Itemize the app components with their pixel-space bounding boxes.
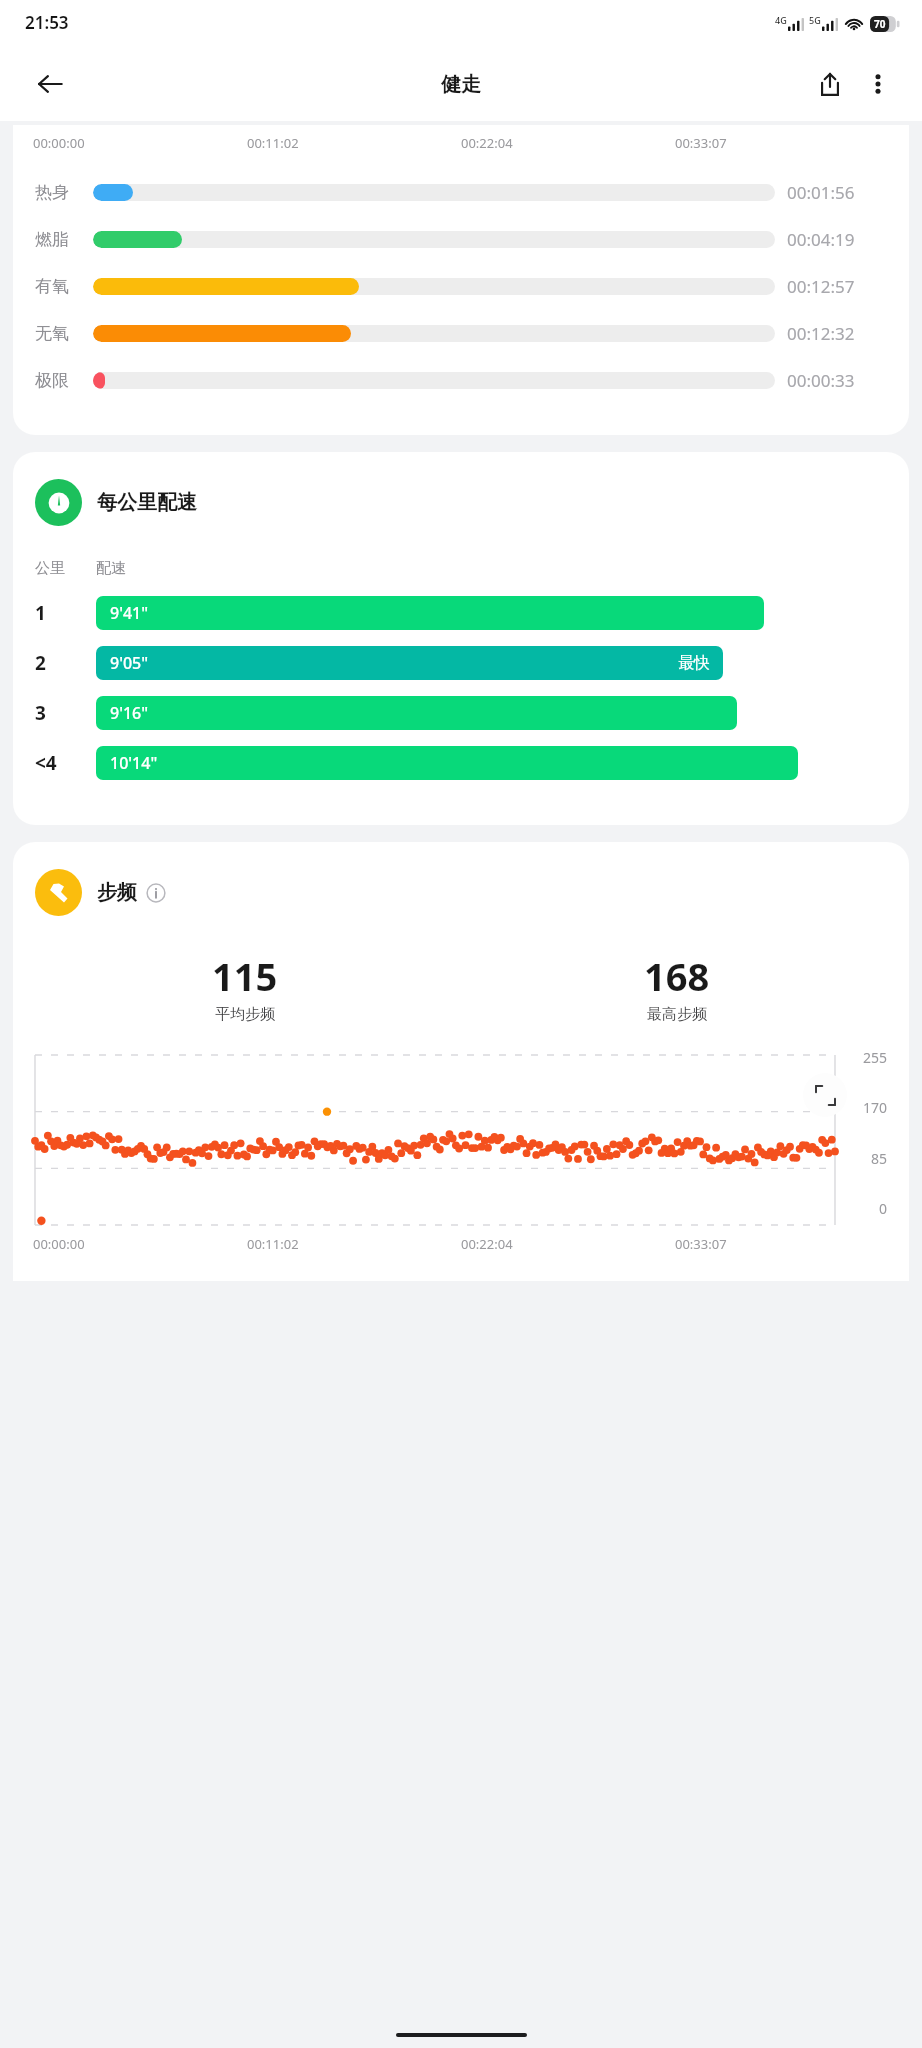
staticText: 最高步频 — [647, 1005, 707, 1024]
staticText: 公里 — [35, 559, 96, 578]
staticText: 1 — [35, 600, 46, 626]
staticText: 00:01:56 — [787, 181, 887, 204]
staticText: 5G — [809, 14, 821, 26]
button[interactable]: Share — [806, 60, 854, 108]
staticText: 热身 — [35, 182, 93, 203]
staticText: 00:11:02 — [247, 134, 299, 152]
staticText: 21:53 — [25, 11, 69, 34]
staticText: 燃脂 — [35, 229, 93, 250]
button[interactable]: Cadence info — [145, 882, 167, 904]
staticText: 00:12:32 — [787, 322, 887, 345]
staticText: 2 — [35, 650, 46, 676]
staticText: 00:00:00 — [33, 134, 85, 152]
staticText: 115 — [212, 950, 278, 1002]
staticText: 00:04:19 — [787, 228, 887, 251]
staticText: 有氧 — [35, 276, 93, 297]
button[interactable]: 00:00:00 — [13, 125, 909, 435]
staticText: 00:22:04 — [461, 134, 513, 152]
staticText: 极限 — [35, 370, 93, 391]
staticText: 9'41" — [110, 602, 149, 624]
staticText: 0 — [878, 1199, 887, 1218]
staticText: 00:00:33 — [787, 369, 887, 392]
staticText: 85 — [870, 1149, 887, 1168]
button[interactable]: Back — [26, 60, 74, 108]
staticText: 168 — [644, 950, 710, 1002]
button[interactable]: 每公里配速 — [13, 452, 909, 825]
staticText: 最快 — [678, 653, 710, 673]
button[interactable]: 9'05" — [96, 646, 723, 680]
staticText: 3 — [35, 700, 46, 726]
staticText: 每公里配速 — [97, 490, 197, 515]
staticText: 00:00:00 — [33, 1235, 85, 1253]
staticText: 170 — [862, 1098, 887, 1117]
button[interactable]: 步频 — [13, 842, 909, 1281]
staticText: 健走 — [441, 72, 481, 97]
button[interactable]: 9'16" — [96, 696, 737, 730]
staticText: 70 — [874, 17, 886, 31]
button[interactable]: 10'14" — [96, 746, 798, 780]
staticText: 00:11:02 — [247, 1235, 299, 1253]
button[interactable]: 9'41" — [96, 596, 764, 630]
staticText: 00:12:57 — [787, 275, 887, 298]
staticText: <4 — [35, 750, 57, 776]
staticText: 10'14" — [110, 752, 158, 774]
staticText: 4G — [775, 14, 787, 26]
staticText: 无氧 — [35, 323, 93, 344]
staticText: 9'05" — [110, 652, 149, 674]
staticText: 00:33:07 — [675, 1235, 727, 1253]
staticText: 00:33:07 — [675, 134, 727, 152]
staticText: 配速 — [96, 559, 126, 578]
staticText: 9'16" — [110, 702, 149, 724]
button[interactable]: More options — [854, 60, 902, 108]
staticText: 步频 — [97, 880, 137, 905]
button[interactable]: Expand chart — [803, 1073, 847, 1117]
staticText: 255 — [862, 1048, 887, 1067]
staticText: 平均步频 — [215, 1005, 275, 1024]
staticText: 00:22:04 — [461, 1235, 513, 1253]
